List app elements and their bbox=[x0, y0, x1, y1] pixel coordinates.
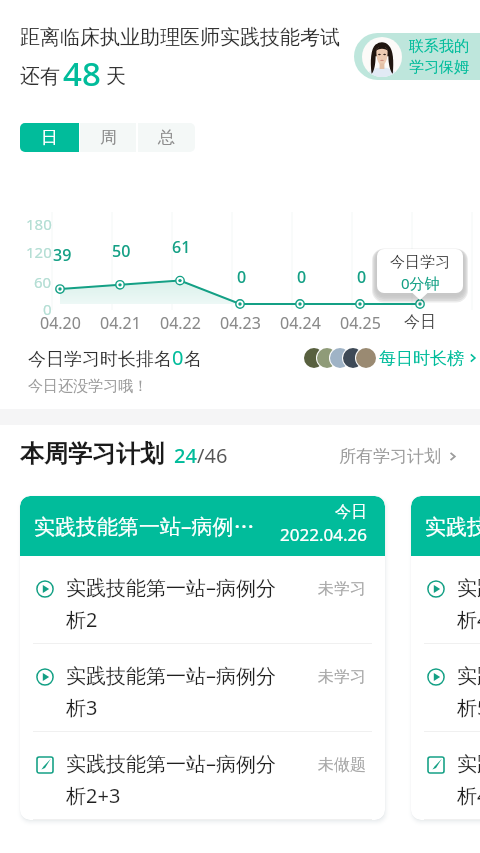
staticText: 今日 bbox=[404, 312, 436, 332]
staticText: 实践技能第一站–病例分析2 bbox=[34, 512, 256, 541]
staticText: 实践技能第一站–病例分析2+3 bbox=[66, 750, 290, 809]
button[interactable]: 总 bbox=[137, 123, 195, 152]
staticText: 120 bbox=[26, 242, 52, 262]
staticText: 0 bbox=[297, 266, 307, 288]
button[interactable]: 实践技能第一站–病例分析4 bbox=[411, 496, 480, 820]
staticText: 04.21 bbox=[100, 312, 141, 334]
staticText: 实践技能第一站–病例分析3 bbox=[66, 662, 290, 721]
staticText: 180 bbox=[26, 214, 52, 234]
staticText: 0 bbox=[43, 299, 52, 319]
button[interactable]: 日 bbox=[20, 123, 79, 152]
staticText: 0分钟 bbox=[401, 273, 440, 293]
button[interactable]: 实践技能第一站–病例分析2 bbox=[20, 496, 385, 820]
staticText: 0 bbox=[237, 266, 247, 288]
staticText: 名 bbox=[184, 348, 202, 371]
staticText: 未做题 bbox=[318, 755, 366, 775]
staticText: 04.20 bbox=[40, 312, 81, 334]
button[interactable]: 实践技能第一站–病例分析4+5 bbox=[411, 732, 480, 819]
staticText: 学习保姆 bbox=[409, 58, 469, 77]
staticText: 总 bbox=[158, 127, 175, 148]
staticText: 还有 bbox=[20, 64, 60, 89]
staticText: 本周学习计划 bbox=[20, 439, 164, 469]
button[interactable]: 实践技能第一站–病例分析4 bbox=[411, 556, 480, 643]
button[interactable]: 联系我的 bbox=[354, 33, 480, 80]
button[interactable]: 所有学习计划 bbox=[339, 446, 459, 467]
staticText: 39 bbox=[53, 244, 72, 266]
button[interactable]: 周 bbox=[79, 123, 137, 152]
staticText: 今日还没学习哦！ bbox=[28, 377, 148, 396]
staticText: 每日时长榜 bbox=[379, 348, 464, 369]
staticText: 04.23 bbox=[220, 312, 261, 334]
staticText: 04.24 bbox=[280, 312, 321, 334]
staticText: 未学习 bbox=[318, 579, 366, 599]
staticText: 未学习 bbox=[318, 667, 366, 687]
staticText: 距离临床执业助理医师实践技能考试 bbox=[20, 25, 340, 50]
button[interactable]: 实践技能第一站–病例分析3 bbox=[20, 644, 385, 731]
staticText: 0 bbox=[357, 266, 367, 288]
staticText: 48 bbox=[63, 51, 101, 96]
button[interactable]: 实践技能第一站–病例分析5 bbox=[411, 644, 480, 731]
staticText: 日 bbox=[41, 127, 58, 148]
staticText: 04.22 bbox=[160, 312, 201, 334]
staticText: 实践技能第一站–病例分析2 bbox=[66, 574, 290, 633]
staticText: 50 bbox=[112, 240, 131, 262]
staticText: 周 bbox=[100, 127, 117, 148]
staticText: 60 bbox=[34, 272, 52, 292]
staticText: 今日学习时长排名 bbox=[28, 348, 172, 371]
staticText: 天 bbox=[106, 64, 126, 89]
staticText: 今日 bbox=[335, 502, 367, 522]
staticText: 联系我的 bbox=[409, 37, 469, 56]
staticText: 24 bbox=[174, 442, 197, 469]
staticText: 实践技能第一站–病例分析4 bbox=[425, 512, 480, 541]
staticText: 所有学习计划 bbox=[339, 446, 441, 467]
staticText: 实践技能第一站–病例分析4+5 bbox=[457, 750, 480, 809]
staticText: 实践技能第一站–病例分析4 bbox=[457, 574, 480, 633]
staticText: 实践技能第一站–病例分析5 bbox=[457, 662, 480, 721]
staticText: 2022.04.26 bbox=[280, 523, 367, 546]
staticText: /46 bbox=[197, 442, 228, 469]
staticText: 61 bbox=[172, 236, 191, 258]
staticText: 04.25 bbox=[340, 312, 381, 334]
staticText: 0 bbox=[172, 344, 184, 371]
staticText: 今日学习 bbox=[390, 253, 450, 272]
button[interactable]: 实践技能第一站–病例分析2+3 bbox=[20, 732, 385, 819]
button[interactable]: 实践技能第一站–病例分析2 bbox=[20, 556, 385, 643]
button[interactable]: 每日时长榜 bbox=[303, 346, 479, 370]
